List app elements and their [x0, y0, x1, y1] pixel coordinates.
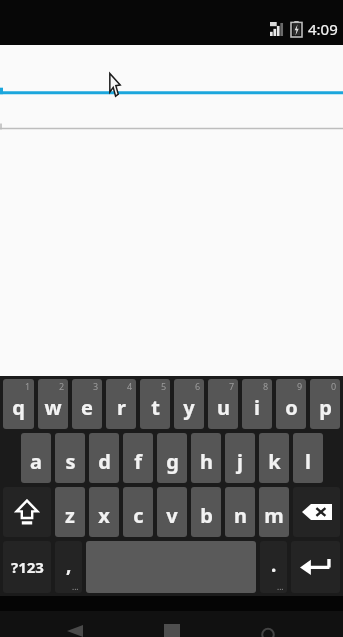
- button[interactable]: j: [225, 433, 255, 483]
- button[interactable]: l: [293, 433, 323, 483]
- button[interactable]: 0: [310, 379, 340, 429]
- button[interactable]: Shift: [3, 487, 51, 537]
- button[interactable]: b: [191, 487, 221, 537]
- staticText: x: [98, 502, 110, 529]
- button[interactable]: 4: [106, 379, 136, 429]
- button[interactable]: ?123: [3, 541, 51, 593]
- button[interactable]: 6: [174, 379, 204, 429]
- staticText: b: [200, 502, 213, 529]
- staticText: 1: [25, 380, 31, 392]
- button[interactable]: 8: [242, 379, 272, 429]
- button[interactable]: 1: [3, 379, 34, 429]
- staticText: ...: [72, 581, 79, 592]
- button[interactable]: 5: [140, 379, 170, 429]
- button[interactable]: k: [259, 433, 289, 483]
- button[interactable]: h: [191, 433, 221, 483]
- staticText: g: [166, 448, 179, 475]
- staticText: d: [98, 448, 111, 475]
- button[interactable]: [0, 88, 343, 114]
- button[interactable]: Enter: [291, 541, 340, 593]
- button[interactable]: 2: [38, 379, 68, 429]
- staticText: f: [134, 448, 142, 475]
- button[interactable]: x: [89, 487, 119, 537]
- button[interactable]: Home: [151, 619, 193, 637]
- staticText: l: [305, 448, 311, 475]
- staticText: w: [44, 394, 62, 421]
- button[interactable]: 9: [276, 379, 306, 429]
- button[interactable]: 7: [208, 379, 238, 429]
- button[interactable]: 3: [72, 379, 102, 429]
- button[interactable]: m: [259, 487, 289, 537]
- staticText: j: [237, 448, 243, 475]
- button[interactable]: Back: [54, 619, 96, 637]
- staticText: k: [268, 448, 281, 475]
- staticText: 2: [59, 380, 65, 392]
- button[interactable]: z: [55, 487, 85, 537]
- staticText: n: [234, 502, 247, 529]
- staticText: 5: [161, 380, 167, 392]
- button[interactable]: Backspace: [293, 487, 340, 537]
- staticText: p: [319, 394, 332, 421]
- staticText: i: [254, 394, 260, 421]
- staticText: q: [12, 394, 25, 421]
- staticText: u: [217, 394, 230, 421]
- staticText: r: [117, 394, 126, 421]
- button[interactable]: f: [123, 433, 153, 483]
- staticText: ?123: [11, 557, 44, 577]
- button[interactable]: Recent apps: [247, 619, 289, 637]
- staticText: 9: [297, 380, 303, 392]
- staticText: c: [133, 502, 144, 529]
- button[interactable]: [0, 115, 343, 141]
- staticText: a: [30, 448, 42, 475]
- staticText: 7: [229, 380, 235, 392]
- staticText: 6: [195, 380, 201, 392]
- staticText: v: [166, 502, 178, 529]
- staticText: e: [81, 394, 93, 421]
- staticText: h: [200, 448, 213, 475]
- button[interactable]: d: [89, 433, 119, 483]
- staticText: o: [285, 394, 298, 421]
- button[interactable]: .: [260, 541, 287, 593]
- button[interactable]: c: [123, 487, 153, 537]
- staticText: 3: [93, 380, 99, 392]
- button[interactable]: v: [157, 487, 187, 537]
- staticText: y: [183, 394, 195, 421]
- button[interactable]: s: [55, 433, 85, 483]
- button[interactable]: n: [225, 487, 255, 537]
- staticText: 4:09: [308, 19, 338, 39]
- staticText: 8: [263, 380, 269, 392]
- staticText: .: [271, 552, 277, 578]
- staticText: 4: [127, 380, 133, 392]
- staticText: z: [65, 502, 75, 529]
- staticText: m: [264, 502, 284, 529]
- staticText: ...: [277, 581, 284, 592]
- staticText: t: [151, 394, 160, 421]
- staticText: 0: [331, 380, 337, 392]
- button[interactable]: ,: [55, 541, 82, 593]
- button[interactable]: a: [21, 433, 51, 483]
- staticText: s: [65, 448, 76, 475]
- button[interactable]: g: [157, 433, 187, 483]
- staticText: ,: [66, 552, 72, 578]
